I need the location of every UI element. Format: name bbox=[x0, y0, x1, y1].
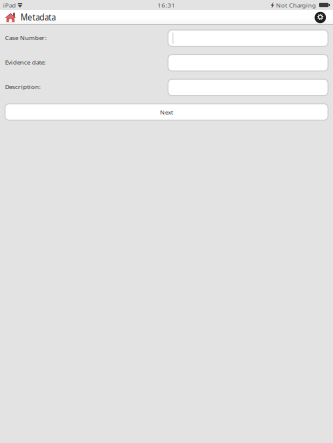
staticText: Metadata bbox=[20, 12, 55, 23]
staticText: Not Charging bbox=[276, 1, 316, 9]
staticText: Next bbox=[160, 108, 173, 116]
button[interactable]: Settings bbox=[313, 10, 328, 25]
staticText: Description: bbox=[5, 82, 41, 91]
staticText: iPad bbox=[3, 1, 16, 9]
staticText: Evidence date: bbox=[5, 58, 46, 66]
staticText: Case Number: bbox=[5, 33, 47, 42]
staticText: 16:31 bbox=[157, 1, 175, 9]
button[interactable]: Next bbox=[5, 104, 328, 120]
